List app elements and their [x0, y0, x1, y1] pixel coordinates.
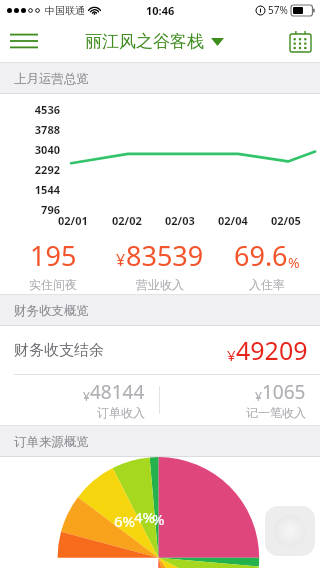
staticText: 57%: [268, 3, 288, 17]
button[interactable]: ¥: [0, 375, 159, 425]
staticText: 中国联通: [45, 4, 85, 17]
staticText: 48144: [90, 379, 145, 405]
staticText: 69.6: [234, 237, 288, 274]
staticText: 4536: [0, 102, 60, 117]
staticText: ¥: [83, 388, 90, 404]
staticText: 记一笔收入: [246, 405, 306, 420]
staticText: ¥: [227, 345, 236, 365]
staticText: 营业收入: [136, 277, 184, 292]
staticText: 02/04: [218, 213, 248, 228]
staticText: 6%: [114, 511, 136, 531]
staticText: %: [152, 509, 165, 529]
button[interactable]: 195: [0, 231, 106, 294]
staticText: 4%: [134, 507, 156, 527]
staticText: 订单收入: [97, 405, 145, 420]
button[interactable]: 69.6: [213, 231, 320, 294]
staticText: 上月运营总览: [14, 71, 89, 87]
staticText: 195: [30, 237, 77, 274]
staticText: 财务收支概览: [14, 303, 89, 319]
button[interactable]: Calendar: [280, 20, 320, 62]
staticText: 02/01: [58, 213, 88, 228]
staticText: 实住间夜: [29, 277, 77, 292]
staticText: 1065: [262, 379, 306, 405]
button[interactable]: ¥: [160, 375, 320, 425]
staticText: 10:46: [146, 3, 175, 18]
staticText: 3788: [0, 122, 60, 137]
staticText: 订单来源概览: [14, 434, 89, 450]
button[interactable]: AssistiveTouch: [265, 506, 315, 556]
staticText: ¥: [116, 249, 126, 271]
staticText: 财务收支结余: [14, 341, 104, 360]
staticText: 3040: [0, 142, 60, 157]
staticText: 02/02: [112, 213, 142, 228]
staticText: 2292: [0, 162, 60, 177]
staticText: 796: [0, 202, 60, 217]
button[interactable]: 丽江风之谷客栈: [85, 31, 224, 52]
staticText: 1544: [0, 182, 60, 197]
staticText: 83539: [126, 237, 204, 274]
staticText: 丽江风之谷客栈: [85, 31, 204, 52]
staticText: ¥: [255, 388, 262, 404]
staticText: 49209: [236, 333, 308, 367]
staticText: 02/03: [165, 213, 195, 228]
staticText: %: [288, 253, 300, 272]
staticText: 入住率: [249, 277, 285, 292]
button[interactable]: 财务收支结余: [0, 326, 320, 374]
staticText: 02/05: [271, 213, 301, 228]
button[interactable]: ¥: [106, 231, 213, 294]
button[interactable]: Menu: [0, 20, 48, 62]
